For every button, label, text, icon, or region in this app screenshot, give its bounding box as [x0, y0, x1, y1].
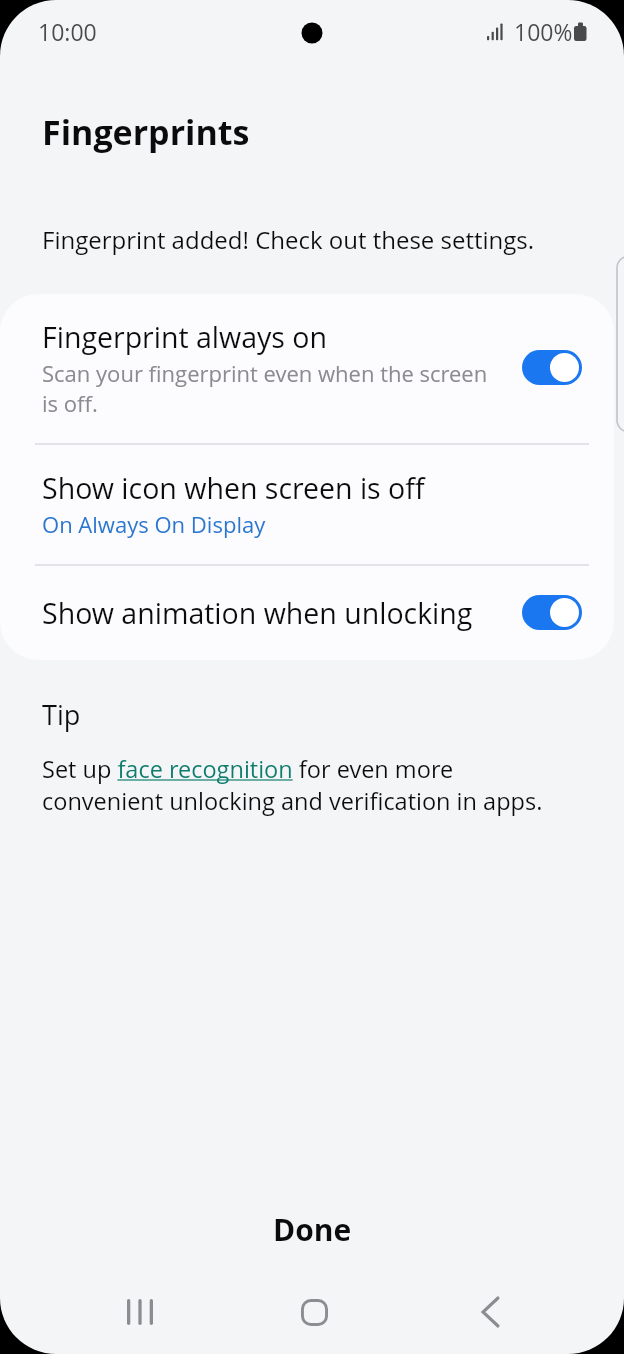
staticText: 10:00: [38, 16, 97, 47]
button[interactable]: Fingerprint always on: [0, 294, 614, 444]
button[interactable]: Show animation when unlocking: [0, 565, 614, 660]
staticText: Scan your fingerprint even when the scre…: [42, 358, 502, 419]
button[interactable]: Toggle: [522, 595, 582, 630]
staticText: Tip: [42, 696, 81, 733]
staticText: 100%: [514, 16, 573, 47]
staticText: Done: [273, 1209, 352, 1250]
staticText: Fingerprint always on: [42, 318, 328, 357]
staticText: Show animation when unlocking: [42, 594, 473, 633]
staticText: Set up face recognition for even more co…: [42, 753, 572, 817]
staticText: On Always On Display: [42, 509, 266, 539]
button[interactable]: Recent apps: [82, 1268, 198, 1354]
button[interactable]: Toggle: [522, 350, 582, 385]
staticText: Show icon when screen is off: [42, 469, 425, 508]
button[interactable]: Home: [256, 1268, 372, 1354]
staticText: Fingerprint added! Check out these setti…: [42, 223, 535, 256]
staticText: Fingerprints: [42, 109, 250, 155]
button[interactable]: Back: [432, 1268, 548, 1354]
button[interactable]: Show icon when screen is off: [0, 444, 614, 565]
button[interactable]: Done: [0, 1187, 624, 1271]
